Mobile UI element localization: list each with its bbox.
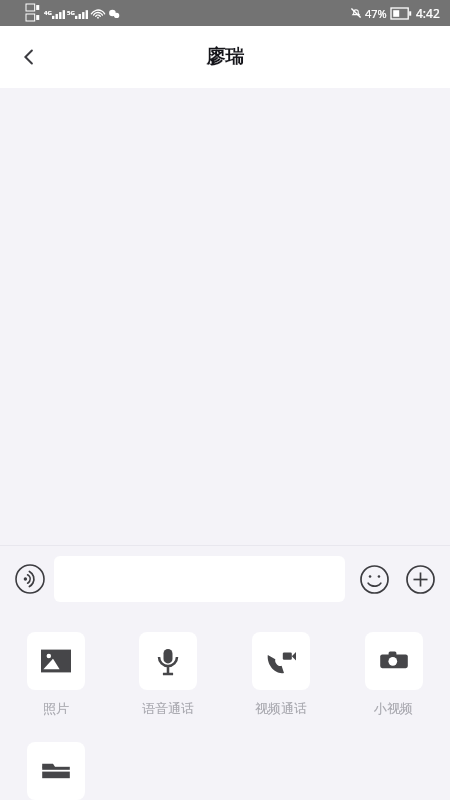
- staticText: 廖瑞: [206, 45, 244, 69]
- button[interactable]: 照片: [0, 632, 112, 716]
- button[interactable]: Voice input: [10, 559, 50, 599]
- staticText: 语音通话: [142, 700, 194, 716]
- button[interactable]: 小视频: [337, 632, 450, 716]
- button[interactable]: 视频通话: [224, 632, 337, 716]
- button[interactable]: File: [0, 742, 112, 800]
- staticText: 47%: [365, 6, 387, 21]
- staticText: 5G: [67, 9, 75, 17]
- staticText: 照片: [43, 700, 69, 716]
- staticText: 视频通话: [255, 700, 307, 716]
- staticText: 小视频: [374, 700, 413, 716]
- button[interactable]: Emoji: [354, 559, 394, 599]
- button[interactable]: Back: [6, 34, 52, 80]
- staticText: 4G: [44, 9, 52, 17]
- staticText: 4:42: [416, 5, 440, 21]
- button[interactable]: More: [400, 559, 440, 599]
- button[interactable]: 语音通话: [112, 632, 224, 716]
